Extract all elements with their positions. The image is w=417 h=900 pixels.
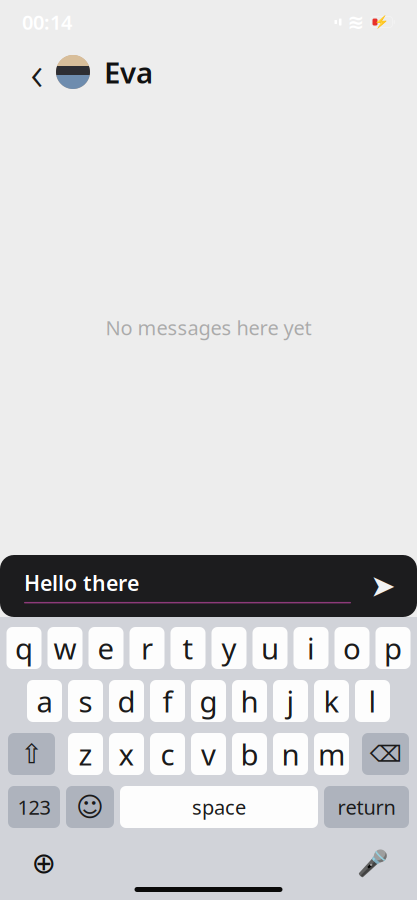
staticText: l — [368, 681, 376, 720]
staticText: m — [318, 734, 345, 773]
staticText: ⊕ — [31, 846, 56, 880]
button[interactable]: Dictate — [351, 843, 395, 883]
staticText: w — [53, 628, 76, 667]
staticText: q — [15, 628, 33, 667]
button[interactable]: q — [6, 627, 41, 669]
button[interactable]: t — [170, 627, 205, 669]
button[interactable]: 123 — [8, 786, 60, 828]
staticText: u — [261, 628, 279, 667]
button[interactable]: c — [150, 733, 185, 775]
staticText: y — [221, 628, 236, 667]
button[interactable]: f — [150, 680, 185, 722]
staticText: f — [162, 681, 172, 720]
button[interactable]: m — [314, 733, 349, 775]
button[interactable]: ☺ — [66, 786, 114, 828]
staticText: i — [307, 628, 315, 667]
staticText: ≋ — [347, 11, 364, 33]
staticText: Eva — [104, 52, 153, 91]
staticText: No messages here yet — [105, 314, 311, 341]
button[interactable]: u — [252, 627, 287, 669]
button[interactable]: l — [355, 680, 390, 722]
staticText: s — [78, 681, 92, 720]
button[interactable]: r — [129, 627, 164, 669]
staticText: e — [97, 628, 114, 667]
button[interactable]: x — [109, 733, 144, 775]
staticText: ➤ — [370, 569, 396, 603]
button[interactable]: Eva — [56, 52, 153, 91]
staticText: p — [384, 628, 402, 667]
button[interactable]: p — [375, 627, 410, 669]
button[interactable]: Back — [18, 50, 56, 94]
staticText: 123 — [17, 794, 50, 820]
staticText: g — [199, 681, 217, 720]
button[interactable]: o — [334, 627, 369, 669]
button[interactable]: b — [232, 733, 267, 775]
button[interactable]: j — [273, 680, 308, 722]
staticText: space — [192, 794, 246, 820]
button[interactable]: g — [191, 680, 226, 722]
staticText: Hello there — [24, 569, 139, 597]
button[interactable]: v — [191, 733, 226, 775]
staticText: b — [240, 734, 258, 773]
button[interactable]: s — [68, 680, 103, 722]
staticText: v — [201, 734, 216, 773]
button[interactable]: space — [120, 786, 318, 828]
staticText: r — [141, 628, 153, 667]
button[interactable]: w — [47, 627, 82, 669]
staticText: x — [118, 734, 134, 773]
button[interactable]: Next keyboard — [22, 843, 66, 883]
staticText: 🎤 — [357, 848, 389, 877]
staticText: ☺ — [76, 792, 104, 822]
button[interactable]: h — [232, 680, 267, 722]
staticText: d — [117, 681, 135, 720]
staticText: return — [337, 794, 395, 820]
button[interactable]: e — [88, 627, 123, 669]
button[interactable]: z — [68, 733, 103, 775]
staticText: ⚡ — [374, 15, 389, 29]
button[interactable]: y — [211, 627, 246, 669]
button[interactable]: ⇧ — [8, 733, 55, 775]
staticText: t — [182, 628, 193, 667]
staticText: ‹ — [30, 40, 43, 104]
staticText: a — [36, 681, 52, 720]
button[interactable]: i — [293, 627, 328, 669]
button[interactable]: ⌫ — [362, 733, 409, 775]
staticText: z — [78, 734, 92, 773]
button[interactable]: d — [109, 680, 144, 722]
staticText: j — [286, 681, 294, 720]
staticText: 00:14 — [22, 9, 72, 35]
button[interactable]: n — [273, 733, 308, 775]
button[interactable]: Send — [363, 566, 403, 606]
staticText: h — [240, 681, 258, 720]
staticText: ⌫ — [369, 741, 401, 767]
button[interactable]: a — [27, 680, 62, 722]
staticText: k — [323, 681, 339, 720]
staticText: ⇧ — [20, 739, 42, 769]
staticText: o — [343, 628, 361, 667]
staticText: n — [281, 734, 299, 773]
staticText: c — [160, 734, 174, 773]
button[interactable]: k — [314, 680, 349, 722]
button[interactable]: return — [324, 786, 409, 828]
